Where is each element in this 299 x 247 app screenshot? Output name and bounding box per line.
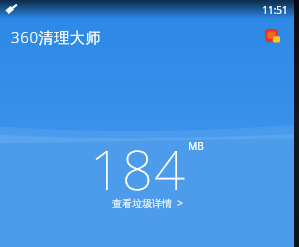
staticText: MB bbox=[188, 139, 204, 153]
staticText: 查看垃圾详情 > bbox=[112, 196, 183, 210]
staticText: 360清理大师 bbox=[11, 27, 101, 47]
staticText: 11:51 bbox=[262, 3, 288, 17]
staticText: 184 bbox=[90, 132, 186, 206]
button[interactable]: 查看垃圾详情 > bbox=[102, 193, 193, 213]
button[interactable]: Open app shortcut bbox=[262, 27, 283, 48]
other: Cleaner notification bbox=[4, 3, 18, 17]
